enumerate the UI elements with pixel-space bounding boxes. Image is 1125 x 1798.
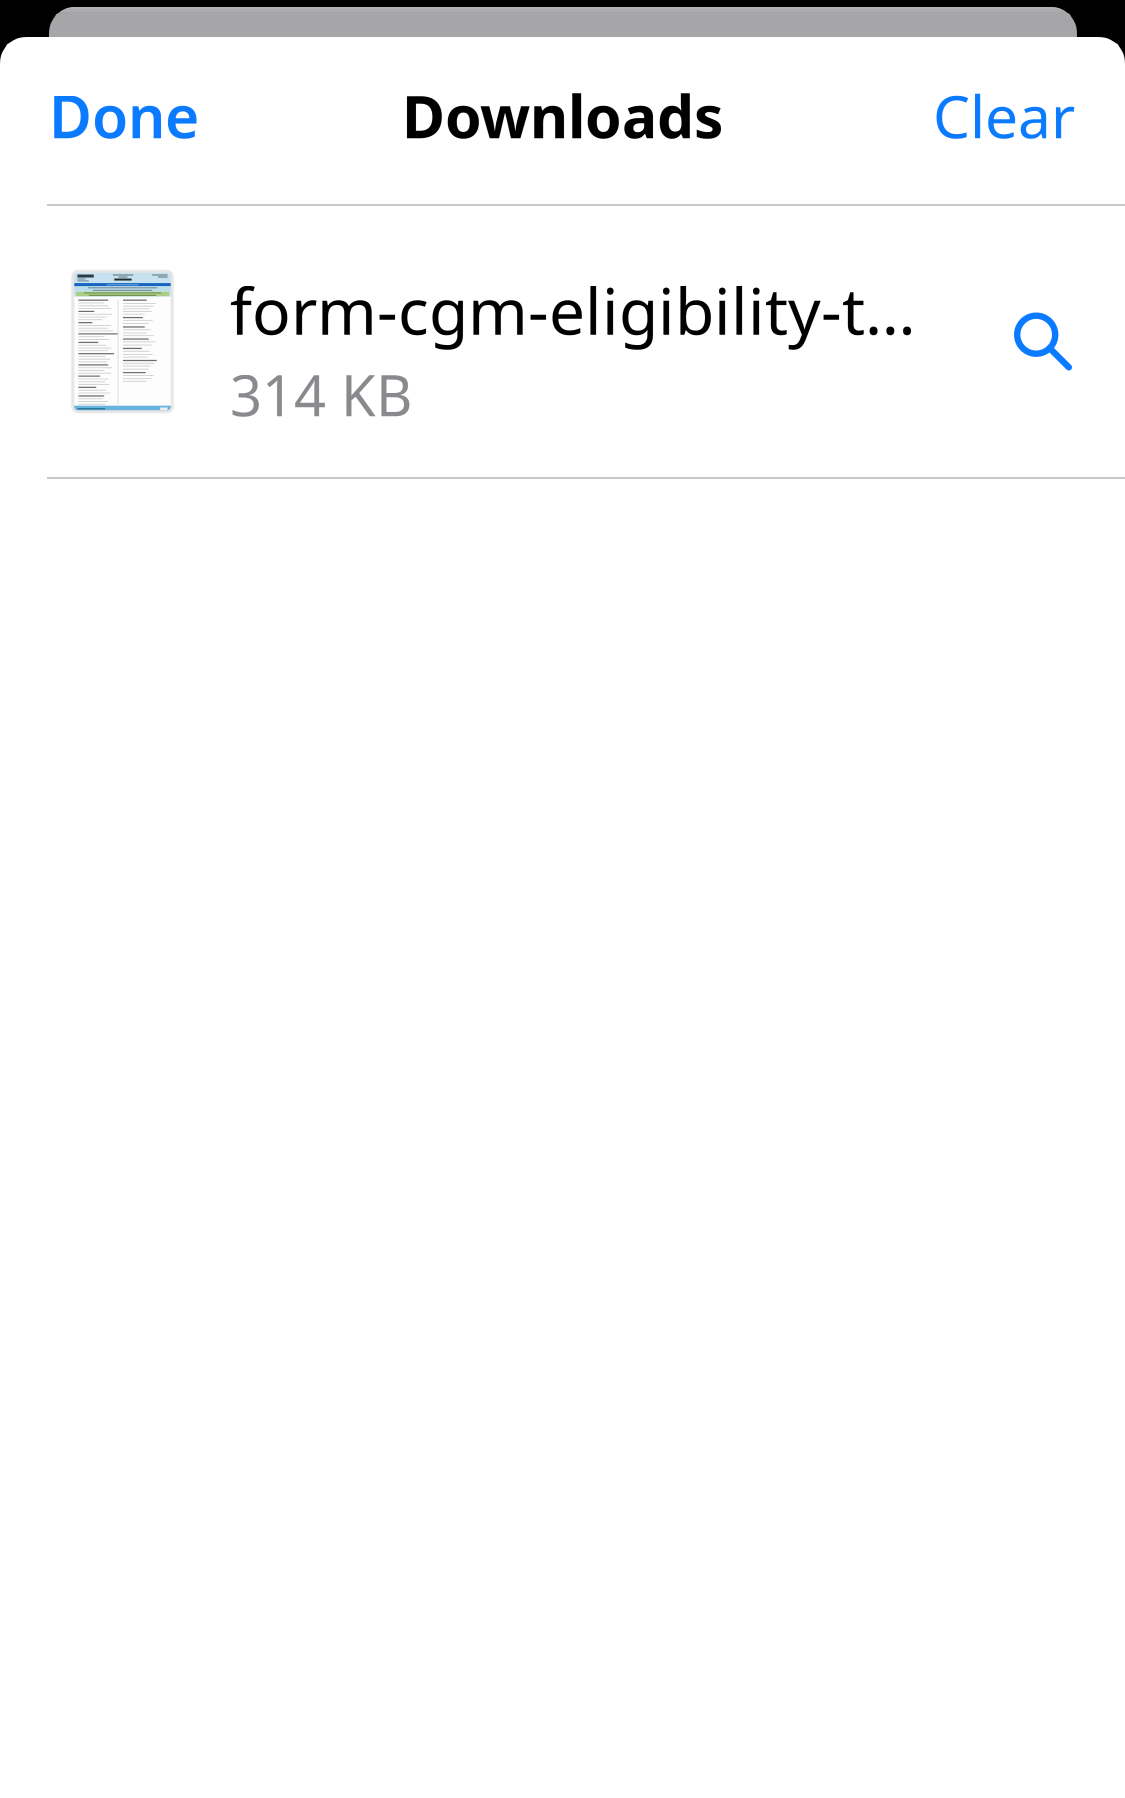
button[interactable]: form-cgm-eligibility-t… bbox=[0, 206, 964, 477]
button[interactable]: Show in Files bbox=[964, 272, 1125, 410]
staticText: Done bbox=[49, 76, 199, 154]
button[interactable]: Clear bbox=[907, 55, 1075, 185]
staticText: Downloads bbox=[402, 76, 723, 154]
staticText: form-cgm-eligibility-t… bbox=[230, 267, 916, 352]
staticText: 314 KB bbox=[230, 357, 412, 432]
staticText: Clear bbox=[933, 76, 1075, 154]
button[interactable]: Done bbox=[49, 55, 225, 185]
